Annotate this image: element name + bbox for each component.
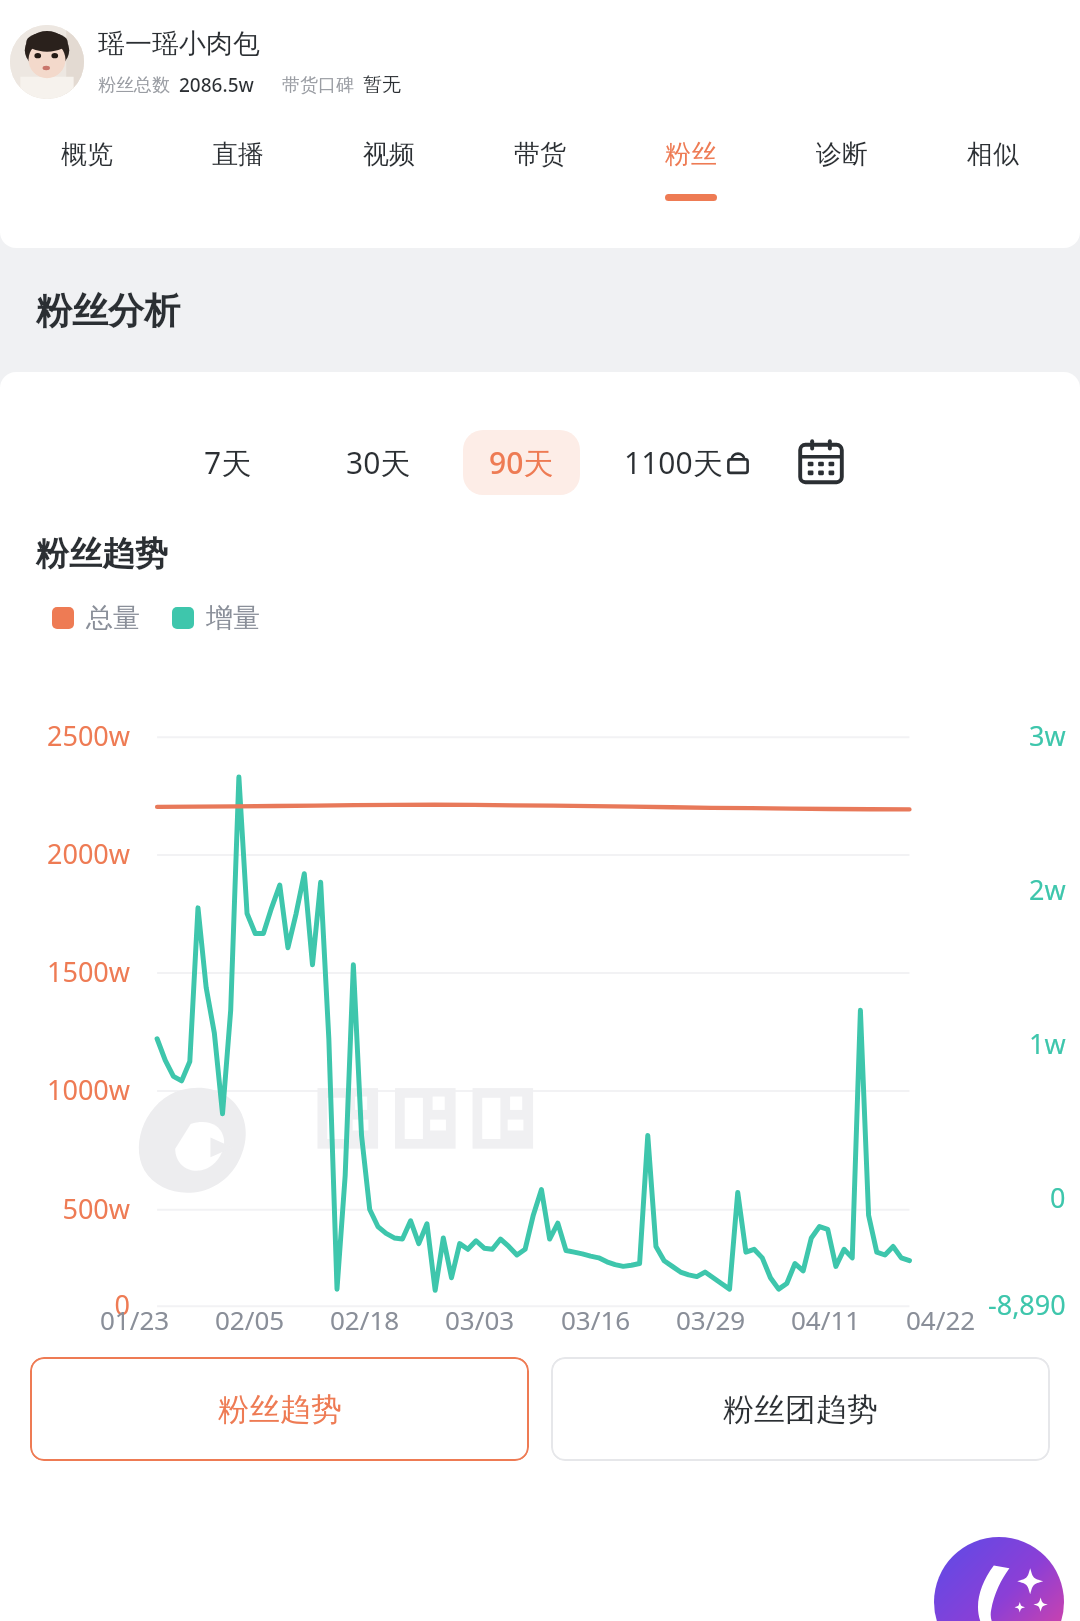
staticText: 02/05 — [215, 1302, 285, 1337]
staticText: 总量 — [86, 601, 140, 635]
staticText: 瑶一瑶小肉包 — [98, 27, 260, 61]
staticText: 03/03 — [445, 1302, 515, 1337]
button[interactable]: Pick date range — [795, 437, 847, 489]
staticText: 1w — [1029, 1025, 1066, 1062]
staticText: 90天 — [489, 442, 554, 483]
staticText: 视频 — [363, 138, 415, 171]
other: Locked — [725, 450, 751, 476]
staticText: 粉丝分析 — [36, 288, 180, 333]
button[interactable]: AI assistant — [934, 1537, 1064, 1621]
staticText: 带货 — [514, 138, 566, 171]
staticText: 2w — [1029, 871, 1066, 908]
button[interactable]: 诊断 — [766, 118, 917, 242]
staticText: 1100天 — [624, 442, 723, 483]
staticText: 1000w — [10, 1071, 130, 1108]
button[interactable]: 1100天 — [624, 442, 751, 483]
button[interactable]: 概览 — [12, 118, 162, 242]
staticText: 2500w — [10, 717, 130, 754]
staticText: 3w — [1029, 717, 1066, 754]
staticText: -8,890 — [988, 1286, 1066, 1323]
staticText: 诊断 — [816, 138, 868, 171]
staticText: 直播 — [212, 138, 264, 171]
button[interactable]: 7天 — [196, 430, 260, 495]
staticText: 概览 — [61, 138, 113, 171]
staticText: 03/29 — [676, 1302, 746, 1337]
staticText: 相似 — [967, 138, 1019, 171]
staticText: 0 — [10, 1286, 130, 1323]
staticText: 0 — [1050, 1179, 1066, 1216]
staticText: 粉丝趋势 — [218, 1390, 342, 1429]
button[interactable]: 粉丝趋势 — [30, 1357, 529, 1461]
button[interactable]: 30天 — [338, 430, 419, 495]
button[interactable]: 粉丝团趋势 — [551, 1357, 1050, 1461]
staticText: 粉丝团趋势 — [723, 1390, 878, 1429]
button[interactable]: 直播 — [162, 118, 313, 242]
staticText: 1500w — [10, 953, 130, 990]
staticText: 7天 — [204, 442, 252, 483]
staticText: 暂无 — [363, 73, 401, 97]
button[interactable]: 粉丝 — [615, 118, 766, 242]
staticText: 2000w — [10, 835, 130, 872]
staticText: 粉丝总数 — [98, 74, 170, 97]
staticText: 粉丝 — [665, 138, 717, 171]
button[interactable]: Profile avatar — [10, 25, 84, 99]
staticText: 带货口碑 — [282, 74, 354, 97]
staticText: 2086.5w — [179, 72, 254, 98]
staticText: 02/18 — [330, 1302, 400, 1337]
button[interactable]: 视频 — [313, 118, 464, 242]
button[interactable]: 相似 — [917, 118, 1068, 242]
staticText: 04/11 — [791, 1302, 861, 1337]
staticText: 03/16 — [561, 1302, 631, 1337]
staticText: 04/22 — [906, 1302, 976, 1337]
button[interactable]: 90天 — [463, 430, 580, 495]
staticText: 500w — [10, 1190, 130, 1227]
staticText: 30天 — [346, 442, 411, 483]
staticText: 增量 — [206, 601, 260, 635]
staticText: 01/23 — [100, 1302, 170, 1337]
button[interactable]: 带货 — [464, 118, 615, 242]
staticText: 粉丝趋势 — [36, 533, 168, 575]
